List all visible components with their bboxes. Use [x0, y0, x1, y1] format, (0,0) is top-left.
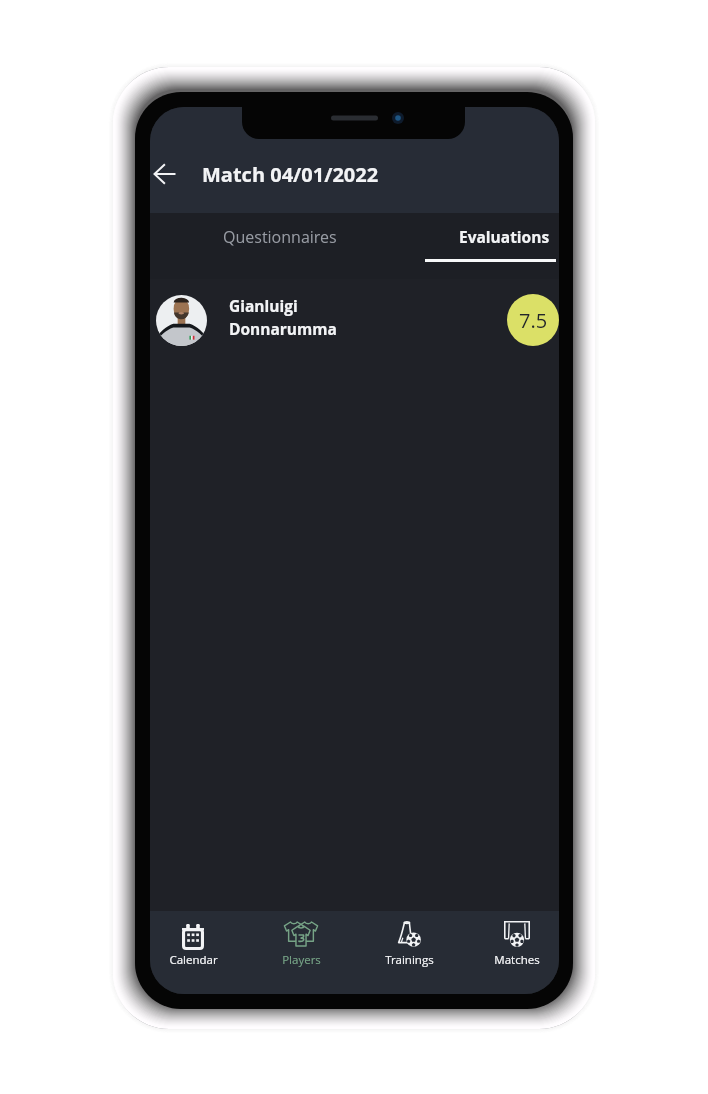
staticText: Evaluations [459, 226, 550, 247]
button[interactable]: Evaluations [384, 213, 559, 279]
staticText: Questionnaires [223, 226, 337, 248]
button[interactable]: Matches [467, 911, 559, 984]
button[interactable]: Back [150, 158, 181, 190]
button[interactable]: Gianluigi [150, 286, 559, 354]
button[interactable]: Players [251, 911, 351, 984]
staticText: Trainings [385, 952, 434, 968]
staticText: Donnarumma [229, 318, 337, 339]
staticText: Players [282, 952, 321, 968]
staticText: Match 04/01/2022 [202, 161, 379, 188]
button[interactable]: Questionnaires [180, 213, 384, 279]
button[interactable]: Calendar [150, 911, 243, 984]
staticText: 7.5 [519, 307, 548, 334]
staticText: Gianluigi [229, 295, 298, 316]
staticText: Matches [494, 952, 540, 968]
button[interactable]: Trainings [359, 911, 459, 984]
staticText: Calendar [169, 952, 218, 968]
